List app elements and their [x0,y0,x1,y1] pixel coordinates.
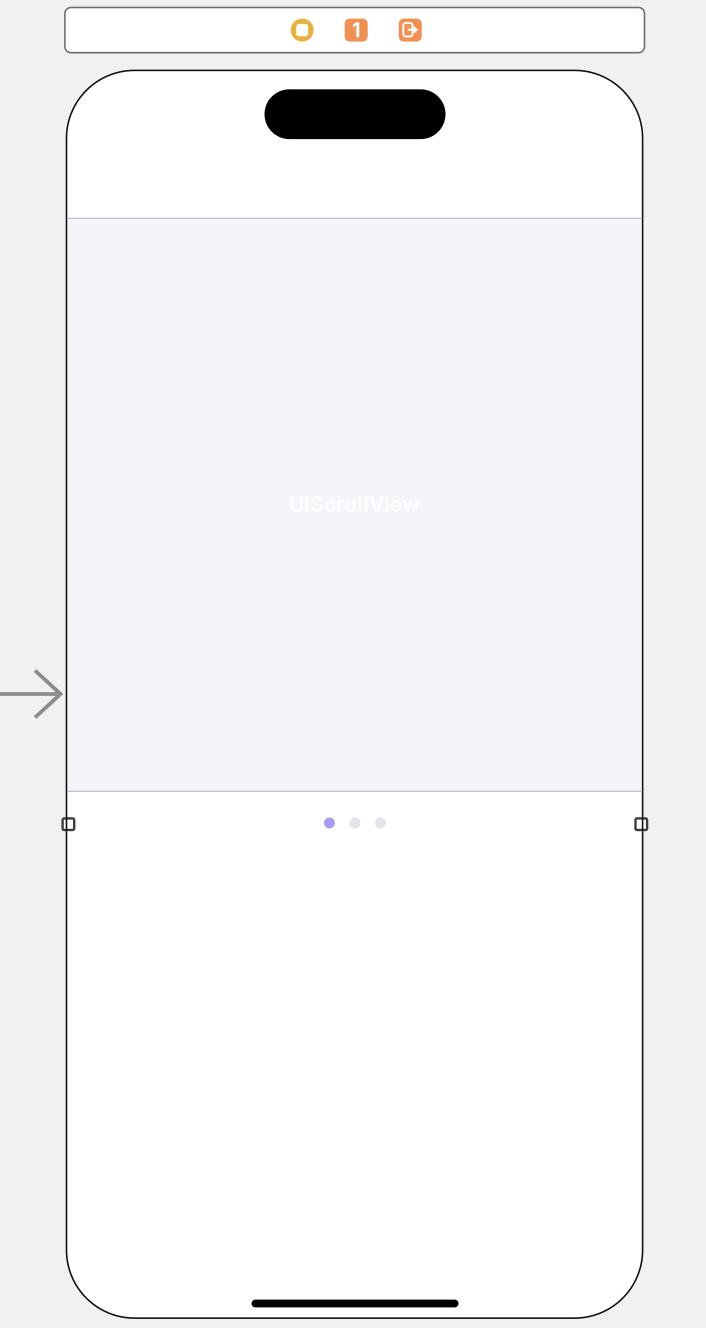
button[interactable]: Export [399,19,422,42]
button[interactable]: Page 1 [345,19,368,42]
button[interactable]: Frame tool [291,19,314,42]
staticText: 1 [352,18,360,42]
staticText: UIScrollView [289,492,420,517]
